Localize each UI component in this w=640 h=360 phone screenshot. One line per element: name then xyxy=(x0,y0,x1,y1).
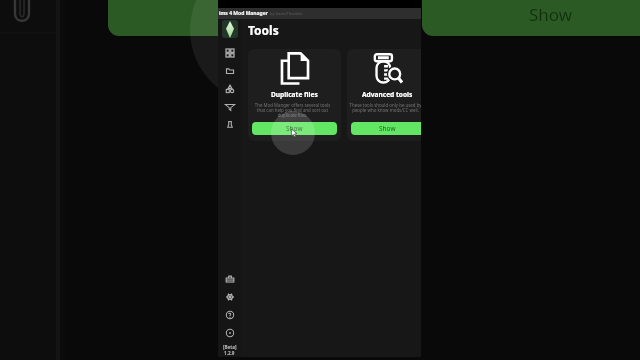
button[interactable]: Advanced tools xyxy=(347,49,421,141)
button[interactable]: Tools xyxy=(221,116,239,134)
button[interactable]: Help xyxy=(221,306,239,324)
button[interactable]: Show xyxy=(252,122,337,135)
button[interactable]: Settings xyxy=(221,288,239,306)
button[interactable]: Home xyxy=(222,20,238,38)
button[interactable]: Filter xyxy=(221,98,239,116)
staticText: 1.2.9 xyxy=(224,350,235,356)
staticText: by GameTheodev xyxy=(270,11,303,16)
button[interactable]: Categories xyxy=(221,80,239,98)
staticText: [Beta] xyxy=(223,344,237,350)
button[interactable]: Show xyxy=(351,122,421,135)
staticText: Tools xyxy=(248,22,279,38)
staticText: These tools should only be used by peopl… xyxy=(349,102,421,114)
button[interactable]: Updates xyxy=(221,324,239,342)
button[interactable]: Toolbox xyxy=(221,270,239,288)
staticText: Show xyxy=(286,124,303,133)
staticText: ims 4 Mod Manager xyxy=(219,10,268,17)
staticText: Duplicate files xyxy=(271,90,318,99)
button[interactable]: Dashboard xyxy=(221,44,239,62)
staticText: Advanced tools xyxy=(362,90,413,99)
staticText: Show xyxy=(529,3,573,24)
button[interactable]: Folders xyxy=(221,62,239,80)
staticText: Show xyxy=(379,124,396,133)
staticText: The Mod Manger offers several tools that… xyxy=(250,102,335,119)
button[interactable]: Duplicate files xyxy=(248,49,341,141)
